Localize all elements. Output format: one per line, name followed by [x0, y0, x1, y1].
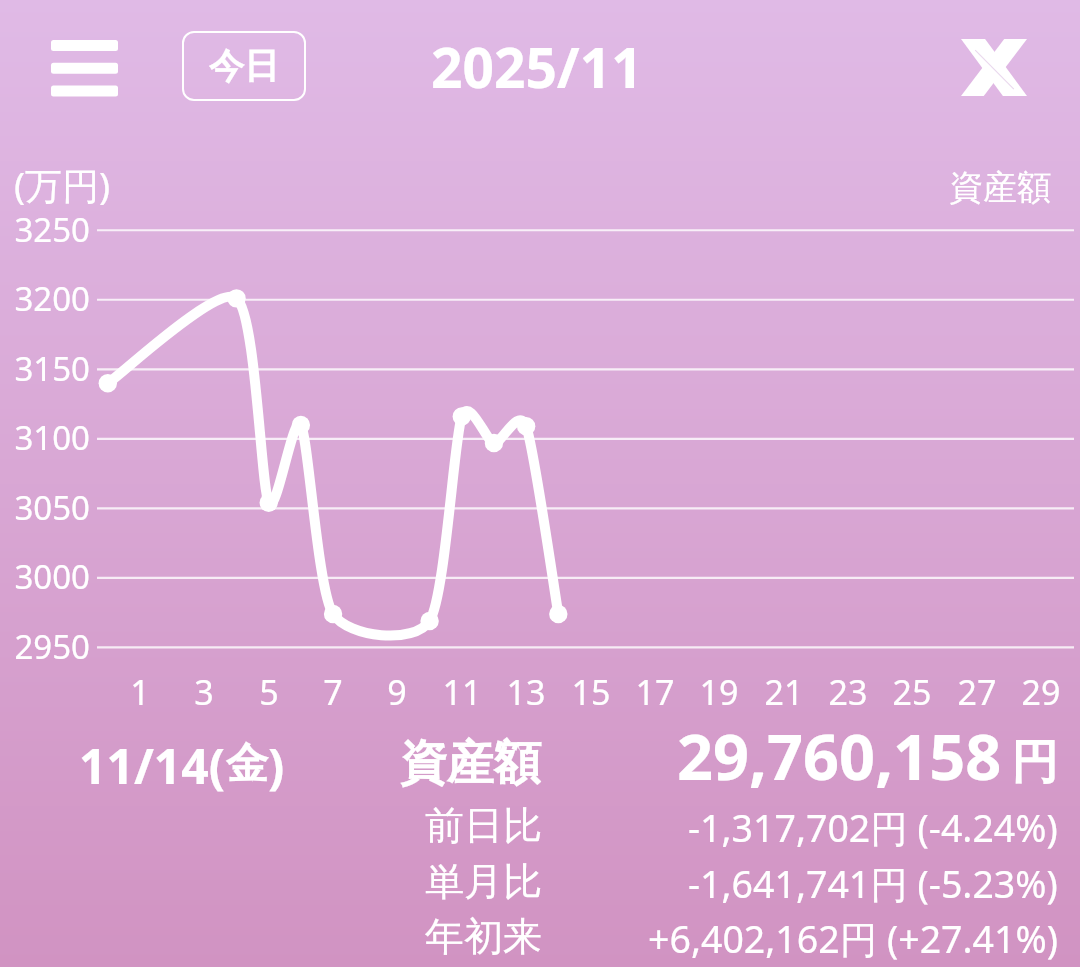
staticText: 単月比	[425, 857, 542, 906]
staticText: 金	[226, 738, 268, 791]
staticText: 資産額	[949, 166, 1051, 209]
staticText: 29	[1011, 669, 1071, 715]
staticText: )	[268, 733, 285, 795]
staticText: -1,317,702円 (-4.24%)	[688, 802, 1058, 853]
staticText: 今日	[209, 44, 279, 88]
staticText: 3250	[1, 207, 90, 252]
staticText: 2950	[1, 624, 90, 669]
staticText: 13	[496, 669, 556, 715]
staticText: 17	[625, 669, 685, 715]
staticText: 11/14(	[79, 733, 226, 795]
staticText: 21	[754, 669, 814, 715]
staticText: -1,641,741円 (-5.23%)	[688, 858, 1058, 909]
staticText: 9	[367, 669, 427, 715]
button[interactable]: Menu	[36, 25, 133, 111]
button[interactable]: X	[951, 29, 1037, 106]
staticText: 5	[239, 669, 299, 715]
staticText: 3150	[1, 346, 90, 391]
staticText: 年初来	[425, 912, 542, 961]
staticText: 23	[818, 669, 878, 715]
staticText: 19	[689, 669, 749, 715]
staticText: 前日比	[425, 801, 542, 850]
staticText: (万円)	[14, 159, 111, 210]
staticText: +6,402,162円 (+27.41%)	[648, 913, 1058, 964]
staticText: 2025/11	[431, 29, 643, 104]
staticText: 1	[110, 669, 170, 715]
button[interactable]: 今日	[182, 31, 306, 101]
staticText: 11	[432, 669, 492, 715]
staticText: 3000	[1, 554, 90, 599]
staticText: 3	[174, 669, 234, 715]
staticText: 27	[947, 669, 1007, 715]
staticText: 15	[561, 669, 621, 715]
staticText: 25	[882, 669, 942, 715]
staticText: 資産額	[400, 734, 541, 793]
staticText: 3050	[1, 485, 90, 530]
staticText: 3200	[1, 276, 90, 321]
staticText: 円	[1011, 733, 1058, 792]
staticText: 29,760,158	[677, 713, 1002, 799]
staticText: 7	[303, 669, 363, 715]
staticText: 3100	[1, 415, 90, 460]
